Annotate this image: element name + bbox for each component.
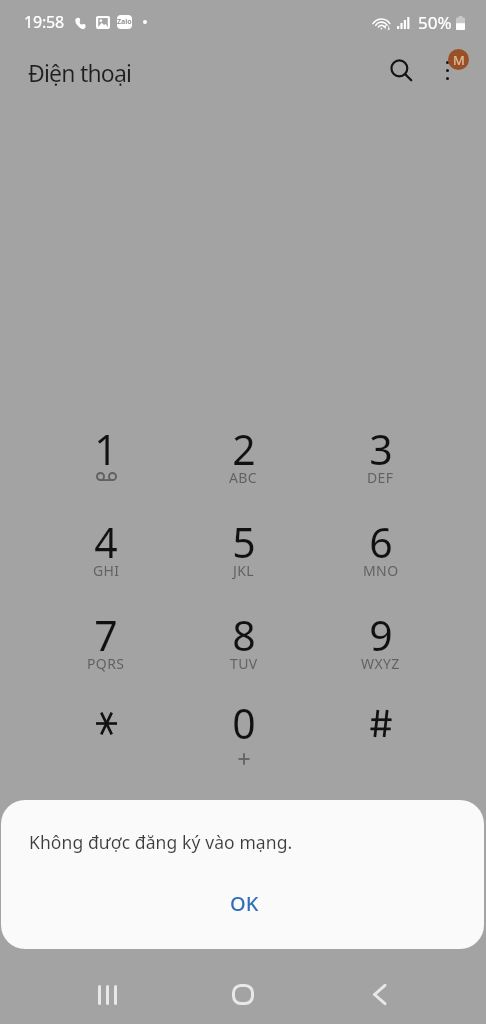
staticText: 19:58 bbox=[24, 11, 64, 33]
staticText: 8 bbox=[232, 607, 256, 663]
staticText: Không được đăng ký vào mạng. bbox=[29, 830, 293, 854]
button[interactable]: 5 bbox=[175, 514, 312, 607]
button[interactable]: More options bbox=[424, 47, 471, 94]
button[interactable]: 4 bbox=[37, 514, 175, 607]
button[interactable]: OK bbox=[214, 884, 275, 923]
button[interactable]: 1 bbox=[37, 421, 175, 514]
staticText: OK bbox=[230, 890, 259, 917]
staticText: TUV bbox=[230, 654, 258, 673]
staticText: M bbox=[453, 51, 465, 69]
staticText: 9 bbox=[369, 607, 393, 663]
button[interactable]: 6 bbox=[312, 514, 449, 607]
staticText: MNO bbox=[363, 561, 399, 580]
staticText: 4 bbox=[94, 514, 118, 570]
button[interactable]: 0 bbox=[175, 695, 312, 788]
button[interactable]: Back bbox=[311, 971, 447, 1019]
staticText: PQRS bbox=[87, 654, 125, 673]
staticText: ABC bbox=[229, 468, 258, 487]
staticText: 6 bbox=[369, 514, 393, 570]
button[interactable]: 3 bbox=[312, 421, 449, 514]
button[interactable]: Search bbox=[376, 45, 424, 93]
staticText: 50% bbox=[418, 11, 452, 34]
staticText: 5 bbox=[232, 514, 256, 570]
staticText: 0 bbox=[232, 695, 256, 751]
button[interactable] bbox=[312, 695, 449, 788]
staticText: Điện thoại bbox=[28, 57, 132, 88]
staticText: WXYZ bbox=[361, 654, 400, 673]
button[interactable]: 7 bbox=[37, 607, 175, 700]
button[interactable]: Account bbox=[448, 49, 469, 70]
staticText: 3 bbox=[369, 421, 393, 477]
staticText: 2 bbox=[232, 421, 256, 477]
button[interactable] bbox=[37, 695, 175, 788]
staticText: Zalo bbox=[117, 17, 132, 27]
button[interactable]: 8 bbox=[175, 607, 312, 700]
button[interactable]: 9 bbox=[312, 607, 449, 700]
button[interactable]: Home bbox=[175, 971, 311, 1019]
staticText: GHI bbox=[93, 561, 120, 580]
staticText: DEF bbox=[367, 468, 394, 487]
button[interactable]: Recents bbox=[39, 971, 175, 1019]
button[interactable]: 2 bbox=[175, 421, 312, 514]
staticText: 1 bbox=[94, 421, 118, 477]
staticText: JKL bbox=[233, 561, 255, 580]
staticText: 7 bbox=[94, 607, 118, 663]
